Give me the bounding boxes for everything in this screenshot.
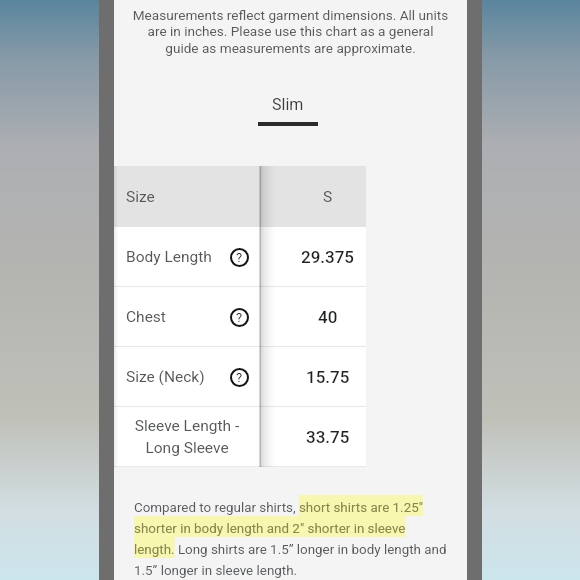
- button[interactable]: Body Length: [114, 227, 366, 287]
- button[interactable]: More information: [230, 308, 249, 327]
- staticText: Chest: [126, 308, 166, 326]
- button[interactable]: Size (Neck): [114, 347, 366, 407]
- staticText: Slim: [272, 95, 304, 114]
- staticText: Size (Neck): [126, 368, 205, 386]
- staticText: Compared to regular shirts, short shirts…: [134, 495, 448, 579]
- button[interactable]: Slim: [258, 95, 318, 126]
- staticText: Size: [126, 188, 155, 206]
- staticText: 33.75: [306, 427, 350, 447]
- staticText: Sleeve Length - Long Sleeve: [114, 417, 260, 457]
- staticText: 15.75: [306, 367, 350, 387]
- button[interactable]: More information: [230, 368, 249, 387]
- staticText: Measurements reflect garment dimensions.…: [130, 7, 451, 56]
- button[interactable]: Chest: [114, 287, 366, 347]
- staticText: ?: [236, 310, 243, 325]
- staticText: ?: [236, 370, 243, 385]
- button[interactable]: More information: [230, 248, 249, 267]
- staticText: ?: [236, 250, 243, 265]
- staticText: 40: [318, 307, 338, 327]
- staticText: 29.375: [301, 247, 355, 267]
- staticText: S: [323, 188, 333, 206]
- staticText: Body Length: [126, 248, 212, 266]
- button[interactable]: Sleeve Length - Long Sleeve: [114, 407, 366, 467]
